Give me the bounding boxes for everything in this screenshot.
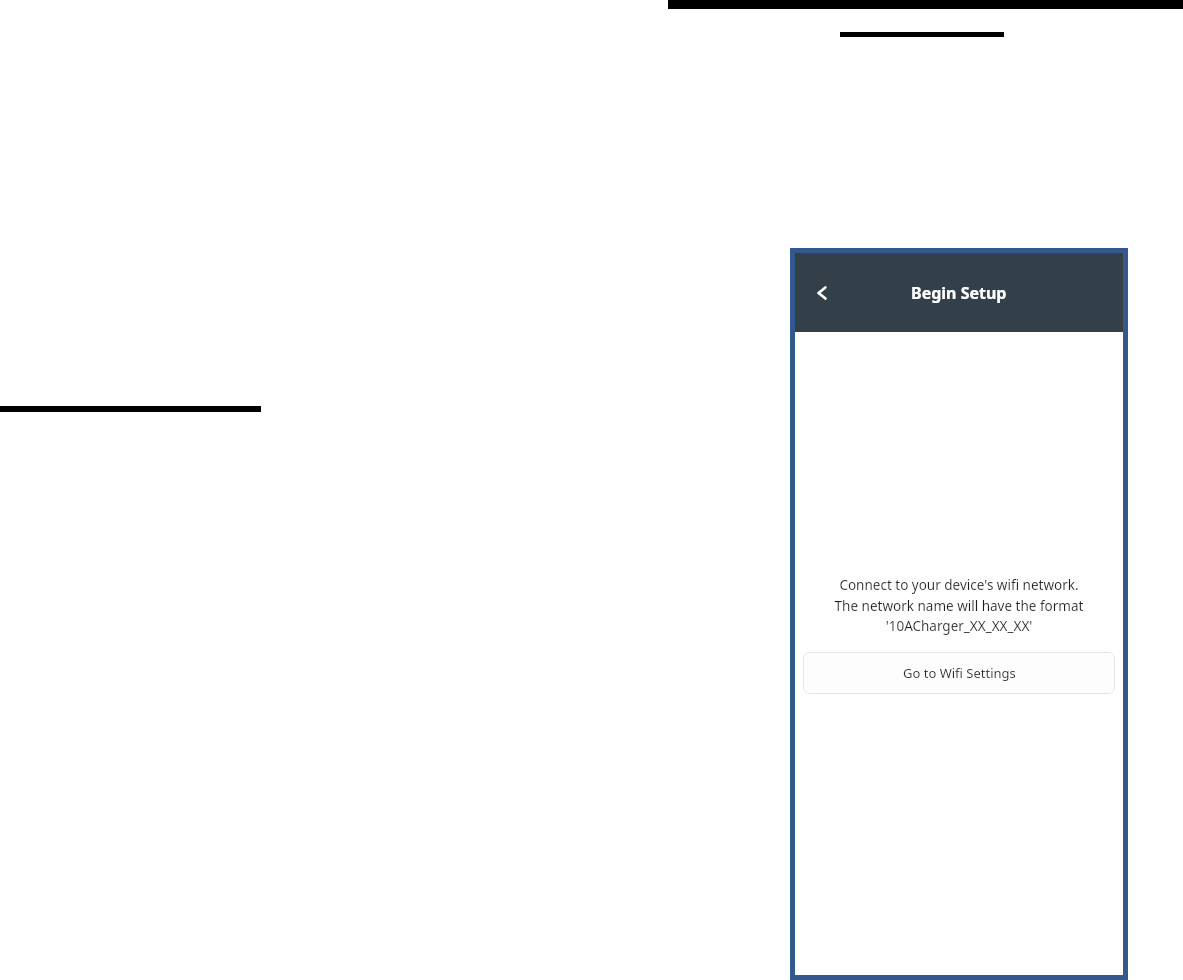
staticText: Go to Wifi Settings bbox=[903, 664, 1016, 682]
staticText: Begin Setup bbox=[911, 282, 1007, 304]
staticText: Connect to your device's wifi network. T… bbox=[795, 576, 1123, 635]
button[interactable]: Back bbox=[801, 271, 845, 315]
button[interactable]: Go to Wifi Settings bbox=[803, 652, 1115, 694]
